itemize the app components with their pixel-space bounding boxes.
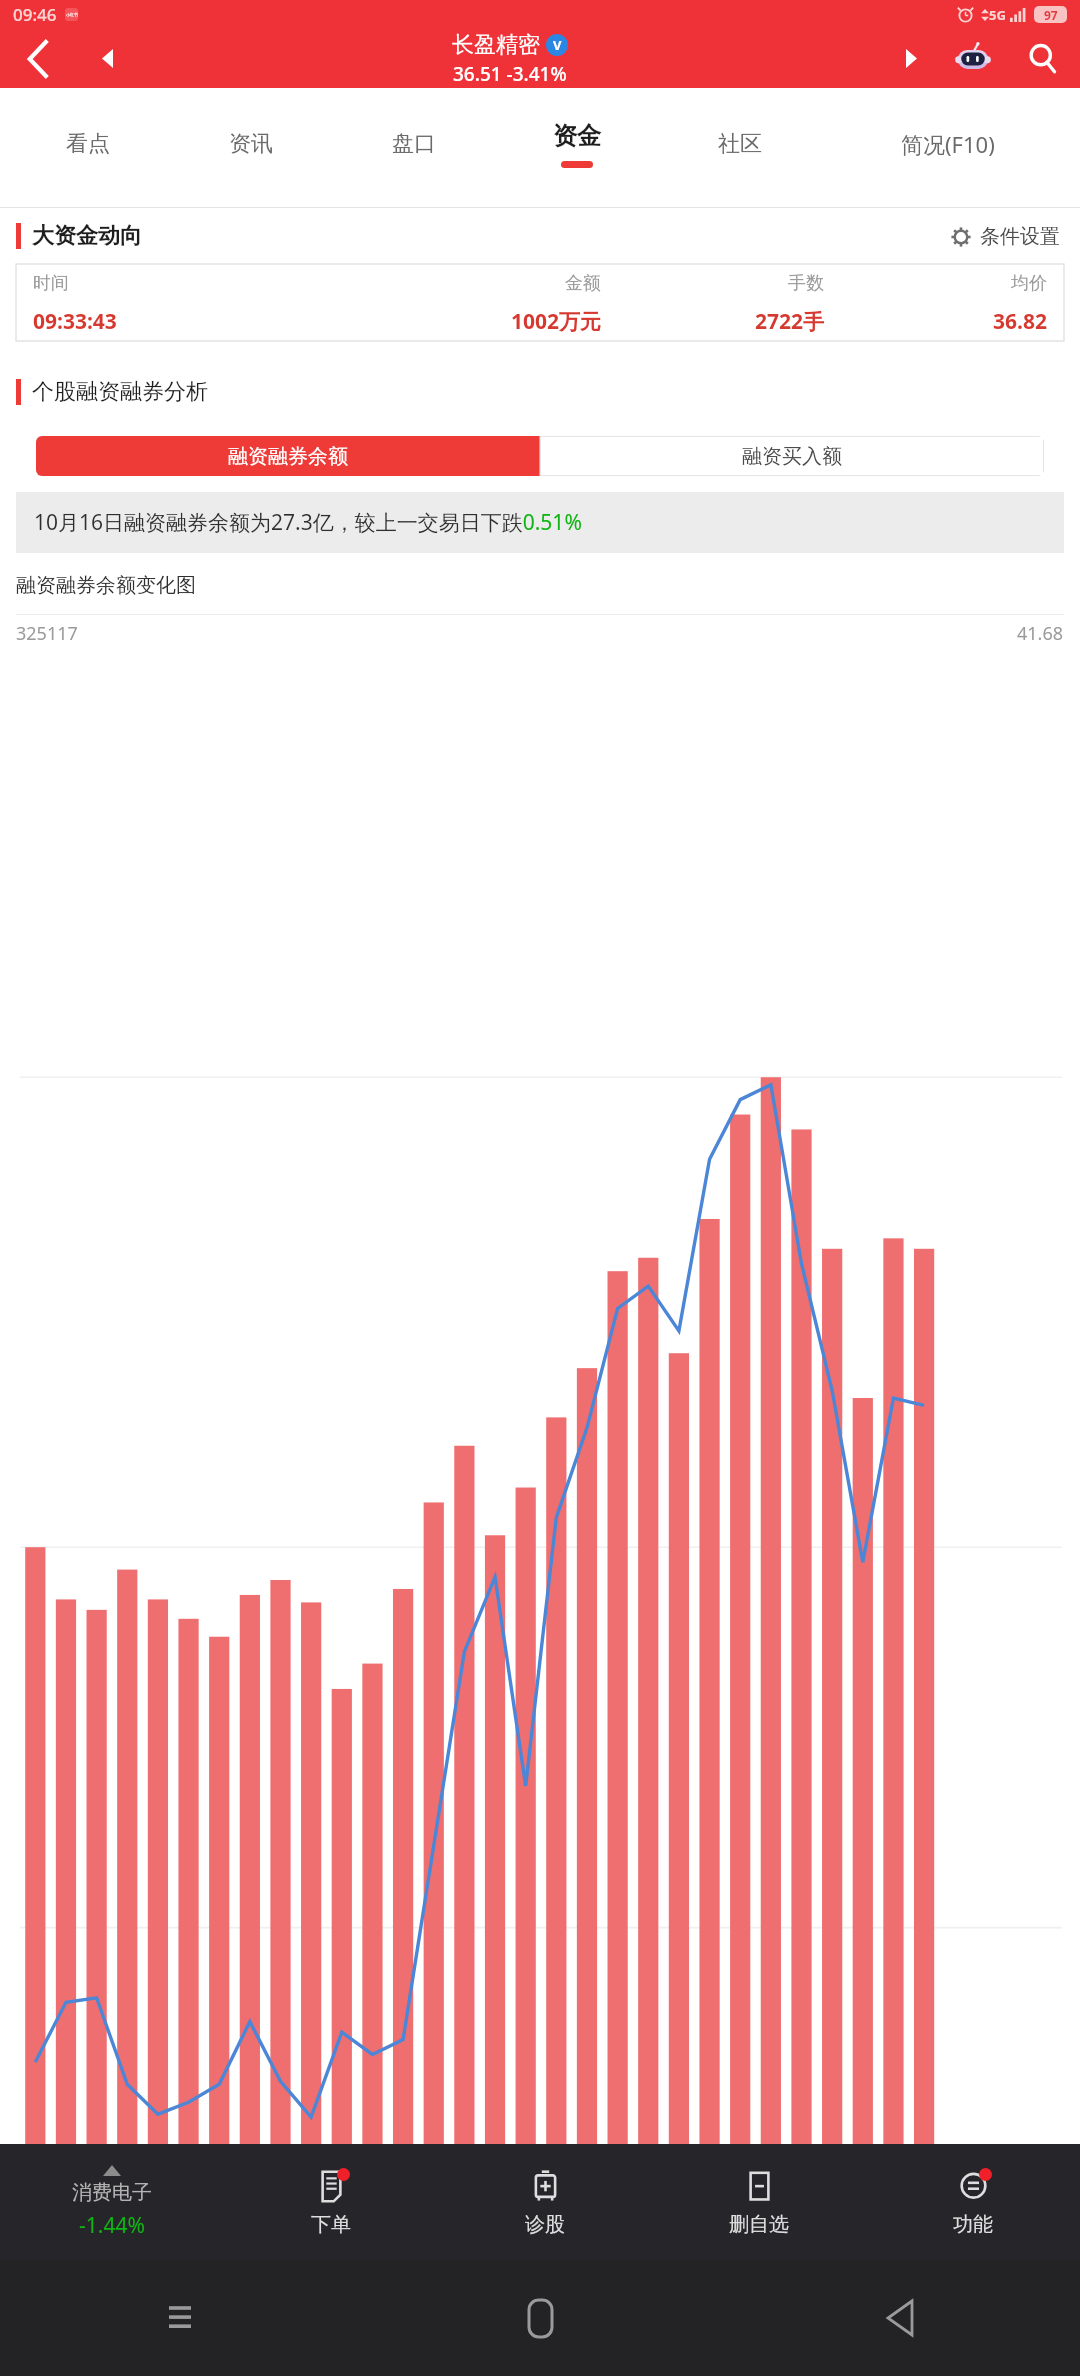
staticText: -1.44% [79, 2211, 145, 2240]
staticText: 诊股 [525, 2212, 565, 2237]
staticText: V [553, 36, 562, 54]
staticText: 1002万元 [322, 307, 601, 336]
staticText: 手数 [601, 272, 824, 295]
staticText: 融资买入额 [742, 444, 842, 469]
button[interactable]: 诊股 [438, 2144, 652, 2260]
button[interactable]: 看点 [6, 88, 169, 200]
staticText: 下单 [311, 2212, 351, 2237]
staticText: 盘口 [392, 130, 436, 158]
staticText: 资金 [553, 121, 601, 151]
button[interactable]: Next stock [882, 29, 940, 88]
staticText: 09:33:43 [33, 307, 322, 336]
button[interactable]: Home [360, 2260, 720, 2376]
staticText: 36.82 [824, 307, 1047, 336]
button[interactable]: 条件设置 [943, 218, 1066, 255]
staticText: 5G [989, 6, 1006, 24]
staticText: 均价 [824, 272, 1047, 295]
button[interactable]: 消费电子 [0, 2144, 224, 2260]
staticText: 10月16日融资融券余额为27.3亿，较上一交易日下跌0.51% [34, 508, 582, 537]
staticText: 消费电子 [72, 2180, 152, 2205]
button[interactable]: 资讯 [169, 88, 332, 200]
staticText: 2722手 [601, 307, 824, 336]
staticText: 36.51 -3.41% [453, 61, 567, 87]
button[interactable]: Back [720, 2260, 1080, 2376]
staticText: 功能 [953, 2212, 993, 2237]
staticText: 金额 [322, 272, 601, 295]
button[interactable]: 资金 [495, 88, 658, 200]
staticText: 个股融资融券分析 [32, 378, 208, 406]
staticText: 09:46 [13, 3, 57, 26]
button[interactable]: 社区 [658, 88, 821, 200]
staticText: 小红书 [66, 12, 78, 17]
button[interactable]: 融资融券余额 [36, 436, 540, 476]
staticText: 条件设置 [980, 224, 1060, 249]
staticText: 融资融券余额 [228, 444, 348, 469]
button[interactable]: Previous stock [76, 29, 138, 88]
staticText: 社区 [718, 130, 762, 158]
button[interactable]: 下单 [224, 2144, 438, 2260]
button[interactable]: 长盈精密 [138, 31, 882, 87]
staticText: 看点 [66, 130, 110, 158]
staticText: 融资融券余额变化图 [16, 573, 196, 598]
button[interactable]: 功能 [866, 2144, 1080, 2260]
staticText: 资讯 [229, 130, 273, 158]
staticText: 删自选 [729, 2212, 789, 2237]
button[interactable]: Back [0, 29, 76, 88]
button[interactable]: 时间 [16, 264, 1064, 341]
staticText: 大资金动向 [32, 222, 142, 250]
staticText: 97 [1044, 7, 1058, 23]
button[interactable]: Recents [0, 2260, 360, 2376]
staticText: 时间 [33, 272, 322, 295]
staticText: 41.68 [1017, 621, 1064, 646]
staticText: 长盈精密 [452, 31, 540, 59]
button[interactable]: 融资买入额 [540, 436, 1044, 476]
button[interactable]: 盘口 [332, 88, 495, 200]
button[interactable]: 删自选 [652, 2144, 866, 2260]
button[interactable]: AI assistant [940, 29, 1006, 88]
staticText: 简况(F10) [901, 129, 995, 159]
staticText: 325117 [16, 621, 78, 646]
button[interactable]: Search [1006, 29, 1080, 88]
button[interactable]: 简况(F10) [821, 88, 1074, 200]
